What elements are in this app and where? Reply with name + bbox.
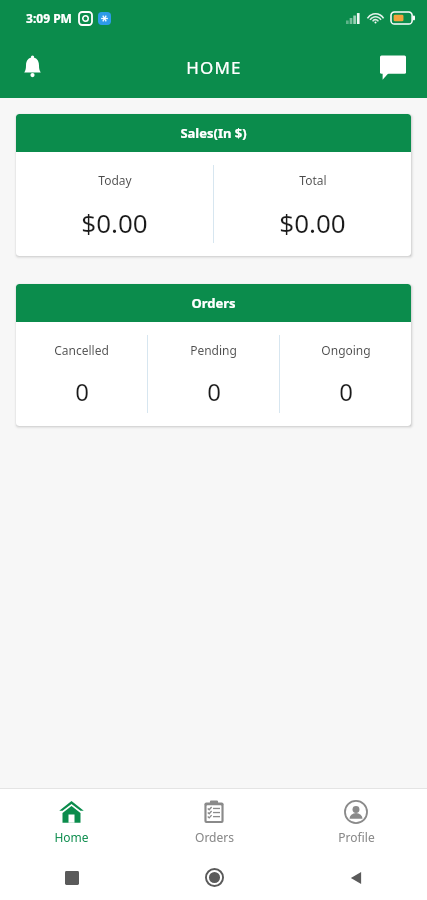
staticText: 3:09 PM xyxy=(26,10,72,26)
staticText: Ongoing xyxy=(321,342,371,358)
button[interactable]: Notifications xyxy=(8,43,56,91)
staticText: Home xyxy=(54,829,89,845)
staticText: Profile xyxy=(338,829,375,845)
staticText: Today xyxy=(98,172,132,188)
staticText: Orders xyxy=(195,829,234,845)
staticText: Pending xyxy=(190,342,237,358)
staticText: 0 xyxy=(339,375,353,408)
button[interactable]: Messages xyxy=(369,43,417,91)
staticText: HOME xyxy=(186,56,242,79)
button[interactable]: Orders xyxy=(143,794,285,851)
button[interactable]: Sales(In $) xyxy=(16,114,411,256)
staticText: Orders xyxy=(191,294,236,312)
button[interactable]: Profile xyxy=(285,794,427,851)
button[interactable]: Home xyxy=(0,793,143,851)
staticText: $0.00 xyxy=(279,205,346,240)
staticText: Total xyxy=(299,172,327,188)
staticText: Cancelled xyxy=(54,342,109,358)
staticText: 0 xyxy=(207,375,221,408)
staticText: Sales(In $) xyxy=(180,124,247,142)
staticText: 0 xyxy=(75,375,89,408)
staticText: $0.00 xyxy=(81,205,148,240)
button[interactable]: Orders xyxy=(16,284,411,426)
